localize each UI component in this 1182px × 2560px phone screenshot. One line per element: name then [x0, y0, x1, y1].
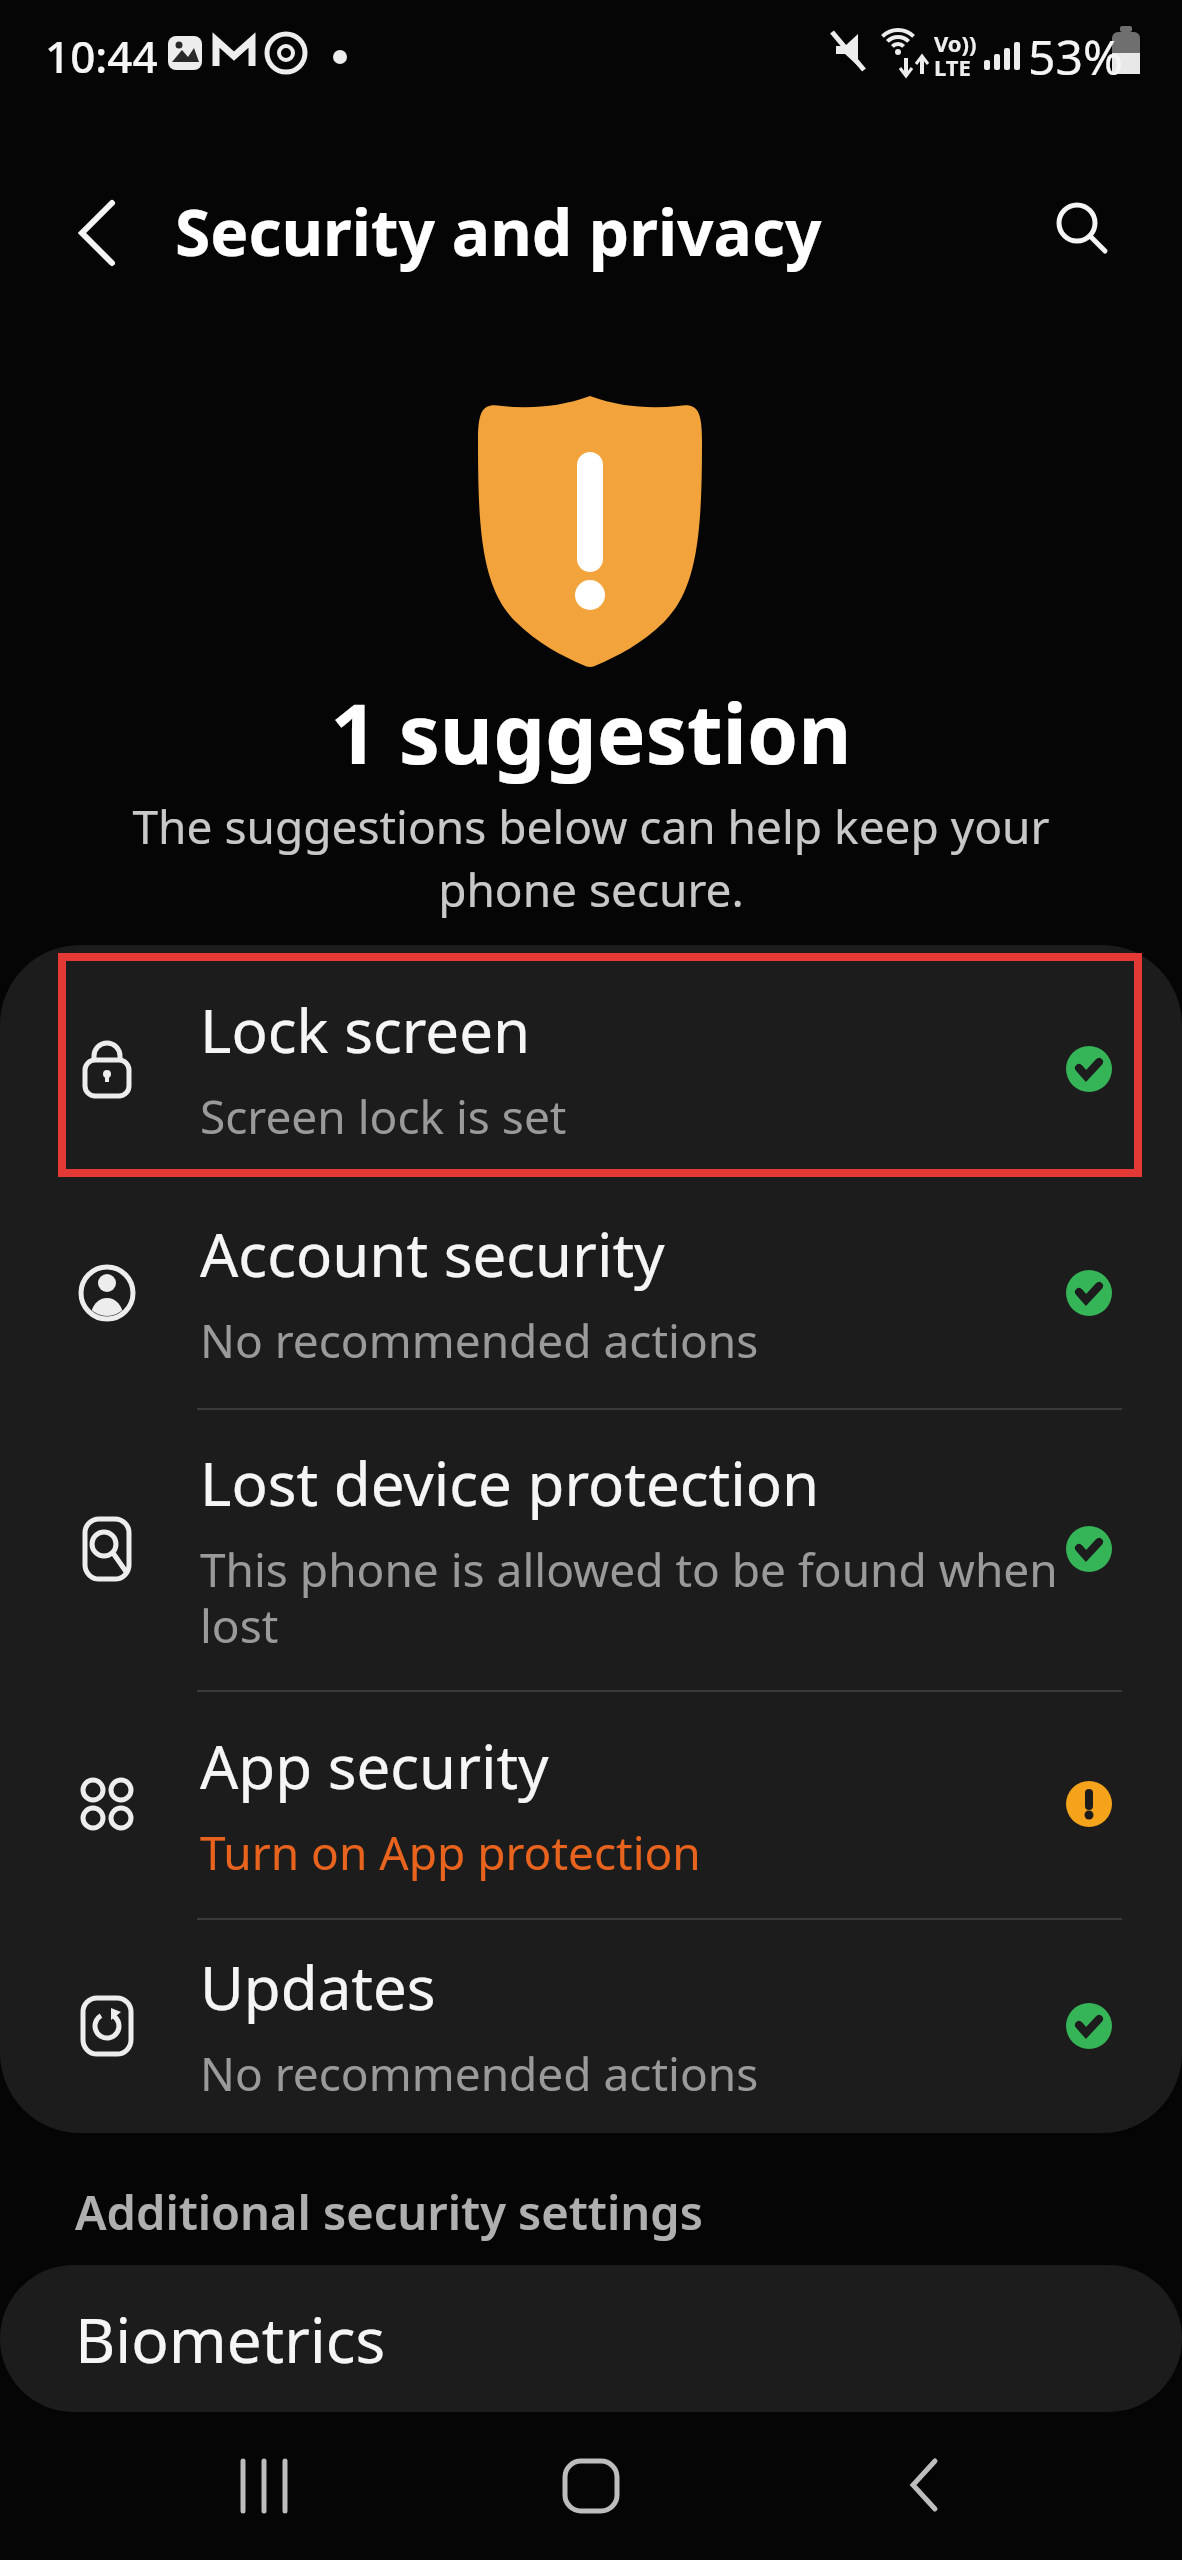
staticText: App security [200, 1725, 549, 1807]
staticText: Turn on App protection [200, 1821, 701, 1884]
staticText: 10:44 [45, 26, 158, 86]
staticText: Security and privacy [175, 188, 822, 275]
staticText: Lost device protection [200, 1442, 820, 1524]
staticText: Updates [200, 1946, 436, 2028]
staticText: This phone is allowed to be found when l… [200, 1538, 1058, 1656]
staticText: No recommended actions [200, 2042, 759, 2105]
button[interactable]: Account security [0, 1177, 1182, 1408]
staticText: LTE [934, 52, 971, 82]
button[interactable] [165, 2437, 365, 2537]
button[interactable] [50, 185, 150, 285]
staticText: Lock screen [200, 989, 531, 1071]
staticText: Biometrics [75, 2297, 386, 2381]
button[interactable]: Lost device protection [0, 1408, 1182, 1690]
staticText: 1 suggestion [0, 676, 1182, 788]
button[interactable] [491, 2437, 691, 2537]
button[interactable] [1035, 185, 1135, 285]
staticText: Vo)) [934, 28, 977, 58]
button[interactable] [824, 2437, 1024, 2537]
staticText: Additional security settings [75, 2180, 703, 2244]
staticText: The suggestions below can help keep your… [0, 795, 1182, 920]
button[interactable]: Updates [0, 1918, 1182, 2133]
button[interactable]: Biometrics [0, 2265, 1182, 2412]
staticText: Account security [200, 1213, 665, 1295]
button[interactable]: App security [0, 1690, 1182, 1918]
staticText: Screen lock is set [200, 1085, 567, 1148]
staticText: 53% [1028, 24, 1123, 89]
staticText: No recommended actions [200, 1309, 759, 1372]
button[interactable]: Lock screen [0, 960, 1182, 1177]
